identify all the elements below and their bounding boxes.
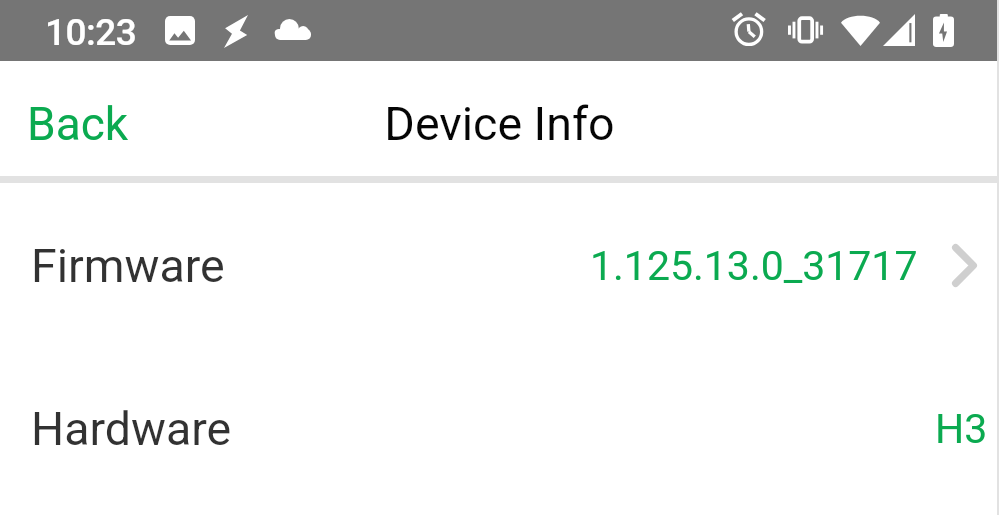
button[interactable]: Hardware bbox=[0, 347, 999, 509]
button[interactable]: Firmware bbox=[0, 183, 999, 347]
staticText: Hardware bbox=[31, 402, 232, 456]
other: Cloud sync bbox=[275, 19, 311, 40]
staticText: 10:23 bbox=[45, 11, 137, 54]
other: Screenshot bbox=[165, 16, 195, 45]
other: Flash bbox=[224, 15, 248, 48]
staticText: H3 bbox=[935, 405, 988, 453]
button[interactable]: Back bbox=[0, 61, 153, 176]
staticText: Back bbox=[27, 97, 129, 151]
other: Mobile signal bbox=[883, 14, 915, 46]
other: Alarm set bbox=[731, 13, 765, 47]
staticText: Device Info bbox=[0, 97, 999, 151]
other: Wi-Fi bbox=[841, 14, 880, 46]
other: Battery charging bbox=[933, 14, 954, 47]
staticText: Firmware bbox=[31, 239, 225, 293]
other: Ringer on vibrate bbox=[787, 16, 823, 44]
staticText: 1.125.13.0_31717 bbox=[590, 242, 918, 290]
